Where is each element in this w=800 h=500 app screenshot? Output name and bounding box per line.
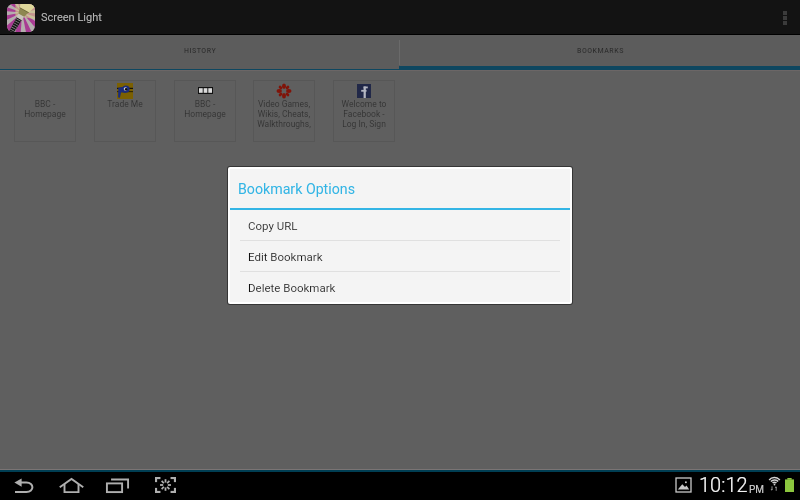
staticText: Trade Me xyxy=(94,99,156,109)
button[interactable]: Home xyxy=(57,472,85,498)
staticText: Bookmark Options xyxy=(238,181,355,198)
button[interactable]: Back xyxy=(10,472,38,498)
button[interactable]: Video Games, Wikis, Cheats, Walkthroughs… xyxy=(253,80,315,142)
staticText: HISTORY xyxy=(184,47,217,55)
staticText: Copy URL xyxy=(248,219,298,232)
button[interactable]: More options xyxy=(770,0,800,35)
staticText: 10:12 xyxy=(699,473,748,496)
button[interactable]: Recent apps xyxy=(103,472,131,498)
button[interactable]: Delete Bookmark xyxy=(230,272,570,302)
staticText: Welcome to Facebook - Log In, Sign xyxy=(333,99,395,129)
staticText: Video Games, Wikis, Cheats, Walkthroughs… xyxy=(253,99,315,129)
staticText: BBC - Homepage xyxy=(174,99,236,119)
button[interactable]: Welcome to Facebook - Log In, Sign xyxy=(333,80,395,142)
staticText: BBC - Homepage xyxy=(14,99,76,119)
button[interactable]: BOOKMARKS xyxy=(400,35,800,66)
staticText: PM xyxy=(749,484,765,496)
button[interactable]: Trade Me xyxy=(94,80,156,142)
button[interactable]: BBC - Homepage xyxy=(14,80,76,142)
staticText: Edit Bookmark xyxy=(248,250,323,263)
staticText: Delete Bookmark xyxy=(248,281,336,294)
staticText: BOOKMARKS xyxy=(577,47,624,55)
button[interactable]: BBC - Homepage xyxy=(174,80,236,142)
staticText: Screen Light xyxy=(41,11,102,24)
button[interactable]: Edit Bookmark xyxy=(230,241,570,271)
button[interactable]: Copy URL xyxy=(230,210,570,240)
button[interactable]: Screenshot xyxy=(151,472,179,498)
